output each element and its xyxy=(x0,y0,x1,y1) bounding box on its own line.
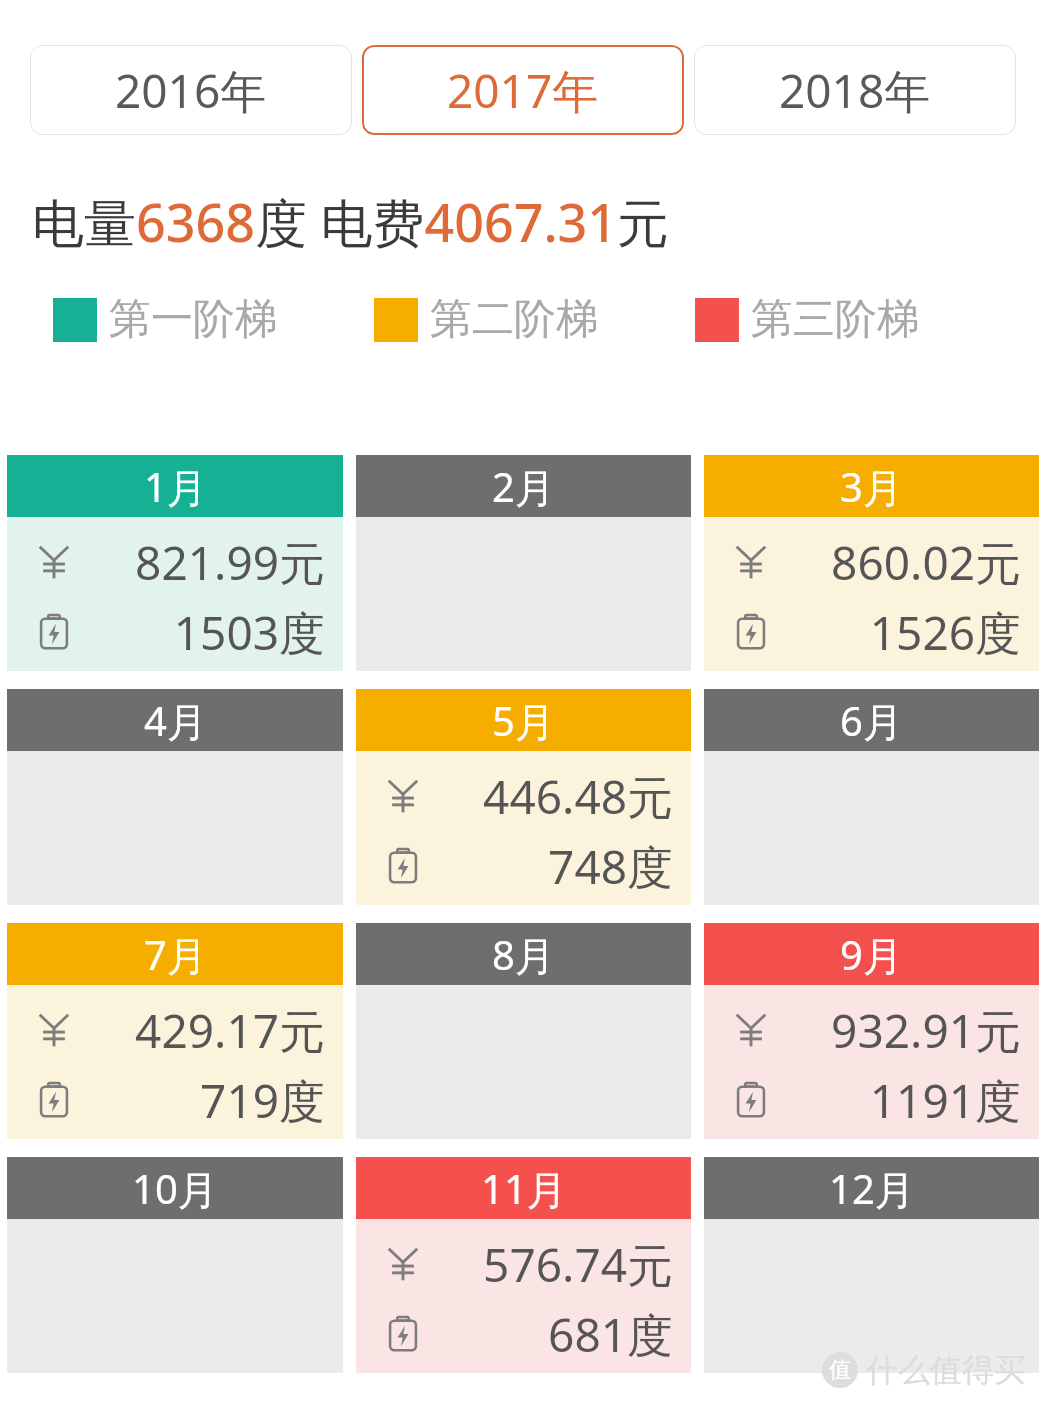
staticText: 1503度 xyxy=(71,601,325,663)
staticText: 10月 xyxy=(132,1161,218,1216)
staticText: 429.17元 xyxy=(71,999,325,1061)
staticText: 第三阶梯 xyxy=(751,293,919,346)
button[interactable]: 11月 xyxy=(356,1157,691,1373)
button[interactable]: 2016年 xyxy=(30,45,352,135)
button[interactable]: 2月 xyxy=(356,455,691,671)
button[interactable]: 第二阶梯 xyxy=(374,293,695,346)
staticText: 681度 xyxy=(420,1303,673,1365)
button[interactable]: 第一阶梯 xyxy=(53,293,374,346)
staticText: 719度 xyxy=(71,1069,325,1131)
staticText: 6月 xyxy=(840,693,903,748)
staticText: 3月 xyxy=(840,459,903,514)
staticText: 1月 xyxy=(144,459,207,514)
button[interactable]: 1月 xyxy=(7,455,343,671)
button[interactable]: 8月 xyxy=(356,923,691,1139)
staticText: 9月 xyxy=(840,927,903,982)
button[interactable]: 4月 xyxy=(7,689,343,905)
staticText: 748度 xyxy=(420,835,673,897)
staticText: 电量6368度 电费4067.31元 xyxy=(32,186,670,257)
staticText: 1526度 xyxy=(768,601,1021,663)
staticText: 第二阶梯 xyxy=(430,293,598,346)
staticText: 5月 xyxy=(492,693,555,748)
staticText: 446.48元 xyxy=(420,765,673,827)
staticText: 1191度 xyxy=(768,1069,1021,1131)
button[interactable]: 12月 xyxy=(704,1157,1039,1373)
staticText: 11月 xyxy=(481,1161,567,1216)
button[interactable]: 第三阶梯 xyxy=(695,293,1016,346)
button[interactable]: 2018年 xyxy=(694,45,1016,135)
button[interactable]: 3月 xyxy=(704,455,1039,671)
staticText: 2018年 xyxy=(779,59,931,122)
staticText: 12月 xyxy=(829,1161,915,1216)
staticText: 什么值得买 xyxy=(866,1350,1026,1390)
staticText: 4月 xyxy=(144,693,207,748)
staticText: 值 xyxy=(829,1356,851,1384)
button[interactable]: 7月 xyxy=(7,923,343,1139)
staticText: 576.74元 xyxy=(420,1233,673,1295)
staticText: 860.02元 xyxy=(768,531,1021,593)
button[interactable]: 10月 xyxy=(7,1157,343,1373)
staticText: 821.99元 xyxy=(71,531,325,593)
button[interactable]: 2017年 xyxy=(362,45,684,135)
staticText: 2017年 xyxy=(447,59,599,122)
staticText: 第一阶梯 xyxy=(109,293,277,346)
staticText: 2月 xyxy=(492,459,555,514)
button[interactable]: 6月 xyxy=(704,689,1039,905)
staticText: 8月 xyxy=(492,927,555,982)
staticText: 2016年 xyxy=(115,59,267,122)
staticText: 7月 xyxy=(144,927,207,982)
button[interactable]: 9月 xyxy=(704,923,1039,1139)
staticText: 932.91元 xyxy=(768,999,1021,1061)
button[interactable]: 5月 xyxy=(356,689,691,905)
